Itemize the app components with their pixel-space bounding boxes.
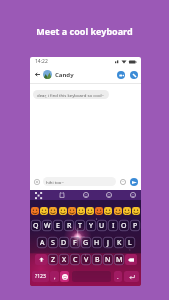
button[interactable]: B [92, 254, 102, 265]
staticText: Y [89, 221, 93, 231]
staticText: H [94, 238, 100, 248]
staticText: F [73, 238, 77, 248]
button[interactable]: Category [129, 191, 137, 199]
button[interactable]: Emoji [104, 207, 112, 215]
button[interactable]: Back [33, 70, 42, 79]
button[interactable]: Send [130, 178, 138, 186]
button[interactable]: U [97, 220, 107, 231]
button[interactable]: T [75, 220, 85, 231]
button[interactable]: Call [130, 71, 138, 79]
staticText: R [67, 221, 72, 231]
button[interactable]: Period [114, 271, 122, 282]
button[interactable]: I [108, 220, 118, 231]
button[interactable]: Emoji [68, 207, 76, 215]
staticText: M [116, 255, 123, 265]
button[interactable]: Emoji [123, 207, 131, 215]
button[interactable]: Emoji keyboard [60, 271, 69, 282]
staticText: E [56, 221, 60, 231]
button[interactable]: Emoji [119, 178, 127, 186]
button[interactable]: V [81, 254, 91, 265]
staticText: G [83, 238, 89, 248]
button[interactable]: O [119, 220, 129, 231]
button[interactable]: Emoji [114, 207, 122, 215]
button[interactable]: J [103, 237, 113, 248]
button[interactable]: M [114, 254, 124, 265]
button[interactable]: Emoji [59, 207, 67, 215]
button[interactable]: Enter [124, 271, 139, 282]
staticText: S [51, 238, 55, 248]
staticText: . [117, 273, 119, 281]
button[interactable]: S [48, 237, 58, 248]
staticText: N [105, 255, 111, 265]
button[interactable]: D [59, 237, 69, 248]
button[interactable]: G [81, 237, 91, 248]
button[interactable]: A [37, 237, 47, 248]
button[interactable]: ?123 [32, 271, 49, 282]
button[interactable]: Emoji [49, 207, 57, 215]
staticText: Q [33, 221, 39, 231]
button[interactable]: K [114, 237, 124, 248]
button[interactable]: Z [48, 254, 58, 265]
button[interactable]: Y [86, 220, 96, 231]
staticText: J [107, 238, 109, 248]
button[interactable]: Q [31, 220, 41, 231]
button[interactable]: Emoji [31, 207, 39, 215]
button[interactable]: Category [105, 191, 113, 199]
staticText: 14:22 [35, 58, 48, 65]
button[interactable]: Emoji [77, 207, 85, 215]
staticText: K [117, 238, 122, 248]
button[interactable]: Emoji [86, 207, 94, 215]
button[interactable]: hihi too~ [43, 177, 116, 186]
staticText: L [128, 238, 132, 248]
button[interactable]: Category [34, 191, 42, 199]
button[interactable]: X [59, 254, 69, 265]
button[interactable]: Add [33, 178, 41, 186]
staticText: U [99, 221, 105, 231]
staticText: Candy [55, 71, 74, 79]
button[interactable]: W [42, 220, 52, 231]
staticText: ?123 [35, 273, 46, 280]
button[interactable]: H [92, 237, 102, 248]
staticText: hihi too~ [46, 179, 64, 185]
button[interactable]: C [70, 254, 80, 265]
button[interactable]: R [64, 220, 74, 231]
button[interactable]: Emoji [132, 207, 140, 215]
staticText: Meet a cool keyboard [0, 25, 169, 37]
staticText: D [61, 238, 67, 248]
button[interactable]: Comma [50, 271, 59, 282]
staticText: W [44, 221, 51, 231]
staticText: T [78, 221, 82, 231]
staticText: I [112, 221, 115, 231]
button[interactable]: L [125, 237, 135, 248]
button[interactable]: P [130, 220, 140, 231]
staticText: O [121, 221, 127, 231]
staticText: dear, i find this keyboard so cool~ [37, 92, 105, 98]
button[interactable]: Video call [117, 71, 125, 79]
staticText: X [62, 255, 67, 265]
button[interactable]: Category [58, 191, 66, 199]
button[interactable]: F [70, 237, 80, 248]
button[interactable]: Category [82, 191, 90, 199]
button[interactable]: N [103, 254, 113, 265]
staticText: B [95, 255, 100, 265]
staticText: V [84, 255, 89, 265]
button[interactable]: Emoji [40, 207, 48, 215]
staticText: A [40, 238, 45, 248]
staticText: P [133, 221, 138, 231]
staticText: , [54, 273, 56, 281]
button[interactable]: E [53, 220, 63, 231]
button[interactable]: Emoji [95, 207, 103, 215]
button[interactable]: Shift [35, 254, 47, 265]
staticText: Z [51, 255, 56, 265]
button[interactable]: Backspace [125, 254, 137, 265]
staticText: C [73, 255, 78, 265]
